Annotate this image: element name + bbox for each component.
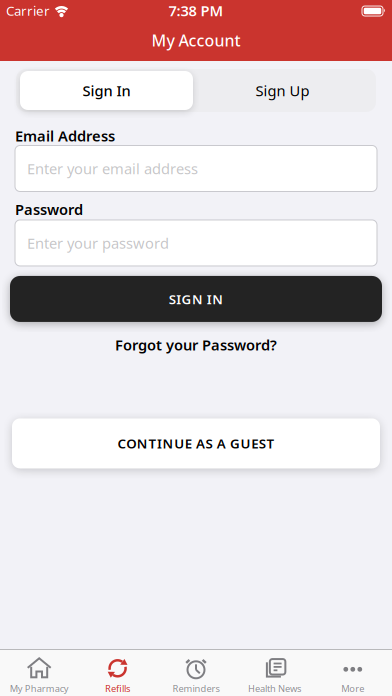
button[interactable]: More (314, 651, 392, 695)
button[interactable]: CONTINUE AS A GUEST (12, 418, 380, 468)
button[interactable]: Enter your password (15, 220, 377, 266)
staticText: Carrier (6, 2, 50, 19)
staticText: More (341, 682, 364, 695)
button[interactable]: Enter your email address (15, 145, 377, 191)
button[interactable]: Reminders (157, 651, 235, 695)
staticText: Refills (105, 682, 130, 695)
staticText: My Account (151, 30, 240, 51)
button[interactable]: Forgot your Password? (115, 335, 277, 354)
button[interactable]: SIGN IN (10, 276, 382, 322)
button[interactable]: My Pharmacy (0, 651, 78, 695)
staticText: Email Address (15, 126, 115, 145)
staticText: SIGN IN (169, 290, 223, 308)
staticText: 7:38 PM (168, 1, 223, 20)
button[interactable]: Sign Up (193, 71, 372, 110)
staticText: Sign Up (255, 81, 309, 100)
staticText: Forgot your Password? (115, 335, 277, 354)
button[interactable]: Health News (235, 651, 314, 695)
staticText: Password (15, 199, 83, 219)
staticText: Sign In (82, 81, 130, 100)
staticText: Enter your password (27, 233, 169, 253)
staticText: Reminders (172, 682, 219, 695)
staticText: Enter your email address (27, 159, 198, 178)
staticText: My Pharmacy (10, 682, 69, 695)
staticText: CONTINUE AS A GUEST (118, 435, 274, 452)
button[interactable]: Sign In (20, 71, 193, 110)
button[interactable]: Refills (78, 651, 157, 695)
staticText: Health News (248, 682, 301, 695)
